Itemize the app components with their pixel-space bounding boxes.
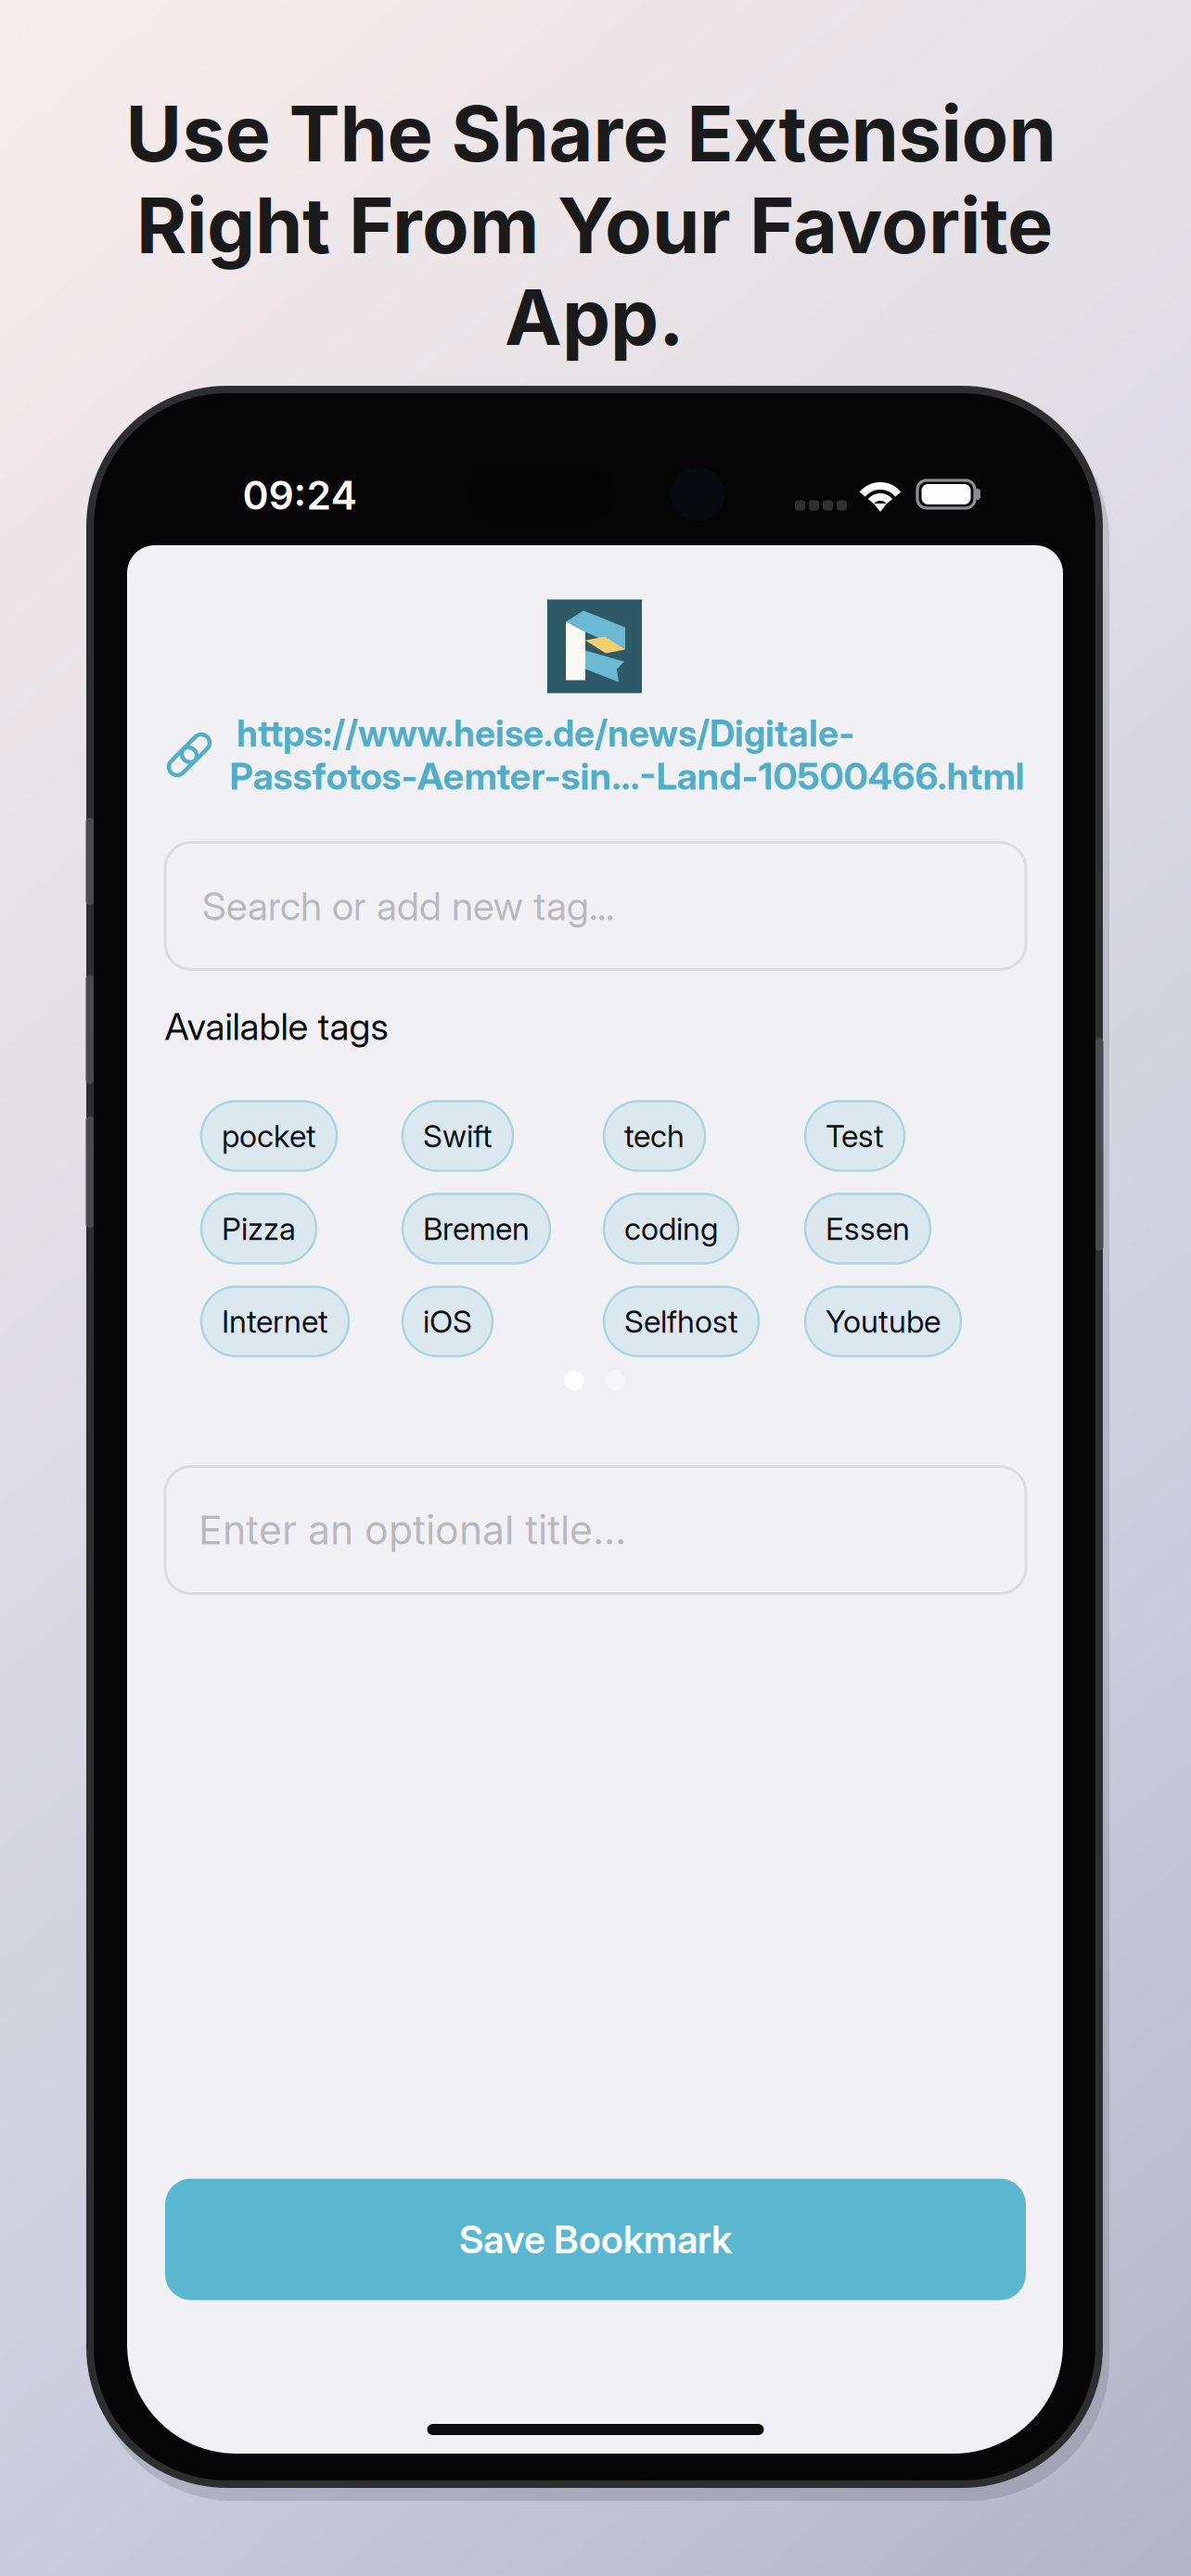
staticText: iOS xyxy=(423,1303,472,1340)
staticText: Available tags xyxy=(165,1004,388,1049)
staticText: https://www.heise.de/news/Digitale- xyxy=(237,712,854,755)
staticText: Swift xyxy=(423,1117,493,1155)
staticText: Youtube xyxy=(826,1303,941,1340)
staticText: Bremen xyxy=(423,1210,530,1247)
button[interactable]: Youtube xyxy=(805,1287,961,1356)
staticText: pocket xyxy=(222,1117,316,1155)
staticText: tech xyxy=(624,1117,685,1155)
staticText: Use The Share Extension xyxy=(126,87,1056,180)
staticText: Enter an optional title... xyxy=(198,1506,626,1554)
button[interactable]: Selfhost xyxy=(604,1287,759,1356)
staticText: coding xyxy=(624,1210,718,1247)
staticText: Internet xyxy=(222,1303,328,1340)
staticText: Selfhost xyxy=(624,1303,738,1340)
button[interactable]: Test xyxy=(805,1101,904,1171)
button[interactable]: Essen xyxy=(805,1194,930,1263)
button[interactable]: coding xyxy=(604,1194,738,1263)
staticText: Pizza xyxy=(222,1210,296,1247)
staticText: Test xyxy=(826,1117,884,1155)
button[interactable]: iOS xyxy=(403,1287,493,1356)
staticText: Search or add new tag... xyxy=(202,882,614,930)
button[interactable]: Search or add new tag... xyxy=(165,842,1026,969)
button[interactable]: Swift xyxy=(403,1101,513,1171)
button[interactable]: Internet xyxy=(201,1287,349,1356)
button[interactable]: tech xyxy=(604,1101,705,1171)
button[interactable]: Pizza xyxy=(201,1194,316,1263)
button[interactable]: Enter an optional title... xyxy=(165,1467,1026,1594)
staticText: Essen xyxy=(826,1210,910,1247)
staticText: Right From Your Favorite xyxy=(136,179,1053,272)
button[interactable]: Save Bookmark xyxy=(165,2179,1026,2300)
button[interactable]: pocket xyxy=(201,1101,337,1171)
button[interactable]: Bremen xyxy=(403,1194,550,1263)
staticText: 09:24 xyxy=(243,471,357,519)
staticText: App. xyxy=(505,271,685,363)
staticText: Save Bookmark xyxy=(459,2216,732,2263)
staticText: Passfotos-Aemter-sin...-Land-10500466.ht… xyxy=(230,754,1025,799)
